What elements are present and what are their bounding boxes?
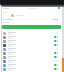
button[interactable]: Enabled (2, 35, 61, 39)
button[interactable]: Enabled (54, 40, 58, 42)
button[interactable]: Enabled (2, 39, 61, 43)
button[interactable]: Disabled (54, 60, 58, 62)
button[interactable]: Disabled (54, 32, 58, 34)
button[interactable]: Disabled (2, 47, 61, 51)
button[interactable]: Disabled (2, 59, 61, 63)
button[interactable]: Disabled (2, 31, 61, 35)
button[interactable]: Enabled (54, 68, 58, 70)
button[interactable]: Enabled (54, 64, 58, 66)
button[interactable]: Enabled (2, 51, 61, 55)
button[interactable]: Enabled (2, 63, 61, 67)
button[interactable]: Disabled (54, 48, 58, 50)
button[interactable]: Enabled (2, 55, 61, 59)
button[interactable]: Enabled (2, 67, 61, 71)
button[interactable]: Enabled (54, 36, 58, 38)
button[interactable] (2, 25, 61, 29)
button[interactable]: Enabled (2, 43, 61, 47)
button[interactable]: Enabled (54, 56, 58, 58)
button[interactable]: Enabled (54, 44, 58, 46)
button[interactable]: Enabled (54, 52, 58, 54)
